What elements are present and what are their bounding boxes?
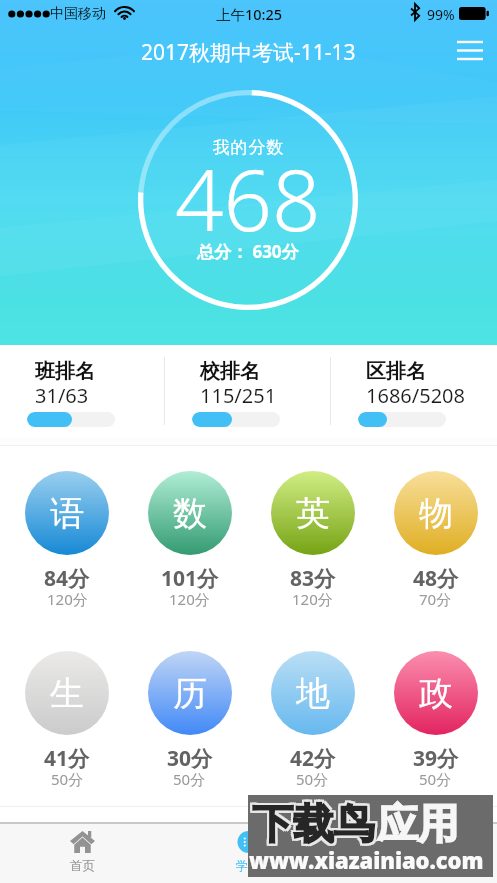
staticText: 应用 [377, 799, 459, 851]
staticText: 下载鸟 [254, 801, 377, 853]
staticText: 101分 [161, 564, 219, 593]
staticText: 120分 [292, 589, 333, 609]
staticText: 上午10:25 [216, 4, 283, 24]
button[interactable]: 地 [251, 651, 374, 793]
staticText: 首页 [70, 858, 95, 874]
staticText: 中国移动 [50, 5, 106, 23]
button[interactable]: 班排名 [0, 345, 165, 437]
button[interactable]: 学习 [165, 824, 331, 883]
staticText: 41分 [44, 744, 90, 773]
staticText: 50分 [419, 769, 452, 789]
button[interactable]: 数 [128, 471, 251, 613]
staticText: 50分 [51, 769, 84, 789]
staticText: 下载鸟 [254, 799, 377, 851]
staticText: 我的 [402, 858, 427, 874]
staticText: 1686/5208 [366, 382, 465, 409]
staticText: 42分 [290, 744, 336, 773]
staticText: 2017秋期中考试-11-13 [141, 38, 356, 67]
staticText: 70分 [419, 589, 452, 609]
staticText: 英 [296, 492, 330, 535]
button[interactable]: 我的 [331, 824, 497, 883]
button[interactable]: 语 [6, 471, 128, 613]
button[interactable]: 首页 [0, 824, 165, 883]
staticText: 总分： 630分 [197, 240, 299, 263]
staticText: 班排名 [35, 359, 95, 384]
staticText: 120分 [169, 589, 210, 609]
staticText: 84分 [44, 564, 90, 593]
staticText: 数 [173, 492, 207, 535]
staticText: 地 [296, 672, 330, 715]
staticText: 50分 [296, 769, 329, 789]
staticText: 31/63 [35, 382, 89, 409]
button[interactable]: 物 [374, 471, 497, 613]
staticText: 语 [50, 492, 84, 535]
staticText: 下载鸟 [254, 797, 377, 849]
staticText: 120分 [47, 589, 88, 609]
button[interactable]: 区排名 [331, 345, 497, 437]
staticText: www.xiazainiao.com [249, 845, 484, 875]
staticText: 生 [50, 672, 84, 715]
staticText: 政 [419, 672, 453, 715]
staticText: 历 [173, 672, 207, 715]
staticText: 115/251 [200, 382, 277, 409]
button[interactable]: 英 [251, 471, 374, 613]
staticText: 学习 [236, 858, 261, 874]
staticText: 99% [427, 5, 455, 24]
button[interactable]: 政 [374, 651, 497, 793]
staticText: 50分 [173, 769, 206, 789]
staticText: 468 [175, 140, 321, 256]
staticText: 下载鸟 [250, 797, 373, 849]
staticText: 校排名 [200, 359, 260, 384]
staticText: 48分 [413, 564, 459, 593]
staticText: 83分 [290, 564, 336, 593]
button[interactable]: 生 [6, 651, 128, 793]
staticText: 下载鸟 [250, 799, 373, 851]
button[interactable]: 历 [128, 651, 251, 793]
button[interactable]: Menu [455, 36, 485, 64]
staticText: 39分 [413, 744, 459, 773]
staticText: 我的分数 [212, 137, 284, 158]
staticText: 下载鸟 [252, 799, 375, 851]
staticText: 区排名 [366, 359, 426, 384]
staticText: 下载鸟 [252, 801, 375, 853]
staticText: 物 [419, 492, 453, 535]
staticText: 30分 [167, 744, 213, 773]
button[interactable]: 校排名 [165, 345, 331, 437]
staticText: 下载鸟 [252, 797, 375, 849]
staticText: 下载鸟 [250, 801, 373, 853]
